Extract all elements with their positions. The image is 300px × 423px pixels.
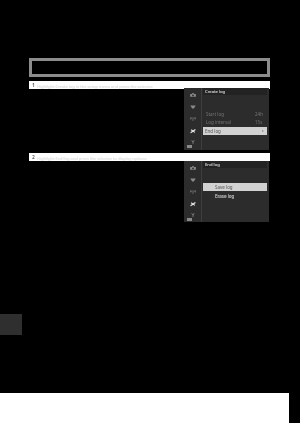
staticText: 24h — [255, 111, 263, 117]
button[interactable]: Save log — [203, 183, 267, 191]
button[interactable]: Playback menu — [184, 101, 201, 113]
staticText: Highlight Create log in the setup menu a… — [37, 84, 153, 89]
staticText: 2 — [32, 154, 35, 161]
button[interactable]: Shooting menu — [184, 89, 201, 101]
button[interactable]: Network menu — [184, 113, 201, 125]
staticText: Create log — [205, 89, 226, 95]
staticText: Erase log — [215, 193, 235, 199]
button[interactable] — [29, 58, 270, 77]
button[interactable]: Setup menu — [184, 198, 201, 210]
button[interactable]: End log — [203, 127, 267, 135]
button[interactable]: Network menu — [184, 186, 201, 198]
button[interactable]: Start log — [206, 111, 263, 117]
button[interactable]: Erase log — [203, 192, 267, 200]
button[interactable]: My menu — [184, 136, 201, 148]
staticText: Log interval — [206, 119, 231, 125]
staticText: End log — [205, 128, 221, 134]
button[interactable]: Log interval — [206, 119, 263, 125]
staticText: Highlight End log and press the selector… — [37, 156, 148, 161]
staticText: End log — [205, 162, 220, 168]
button[interactable]: Shooting menu — [184, 162, 201, 174]
button[interactable]: My menu — [184, 209, 201, 221]
staticText: Save log — [215, 184, 233, 190]
staticText: 15s — [255, 119, 263, 125]
button[interactable]: Setup menu — [184, 125, 201, 137]
staticText: 1 — [32, 82, 35, 89]
button[interactable]: Playback menu — [184, 174, 201, 186]
staticText: Start log — [206, 111, 224, 117]
